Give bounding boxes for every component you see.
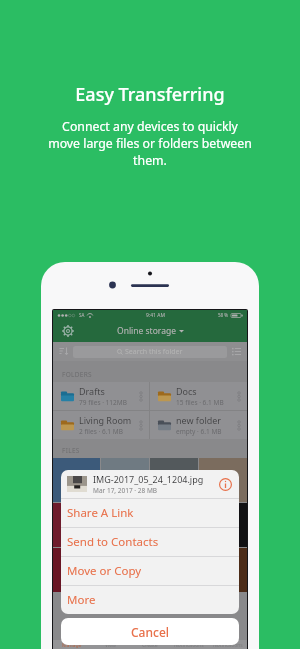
button[interactable]: View [91, 640, 130, 649]
staticText: Share A Link [67, 505, 134, 521]
button[interactable] [150, 458, 198, 502]
button[interactable]: Notifications [169, 640, 208, 649]
staticText: More [67, 592, 96, 608]
button[interactable] [199, 503, 247, 547]
staticText: Send to Contacts [67, 534, 159, 550]
staticText: Manage [62, 642, 82, 649]
button[interactable]: More options [234, 388, 243, 404]
staticText: 15 files · 6.1 MB [176, 398, 224, 407]
button[interactable] [101, 503, 149, 547]
button[interactable] [53, 458, 100, 502]
button[interactable]: Sort [57, 345, 70, 358]
button[interactable]: Settings [61, 324, 75, 338]
staticText: IMG-2017_05_24_1204.jpg [93, 473, 204, 485]
staticText: FOLDERS [62, 370, 92, 379]
button[interactable]: Move or Copy [61, 557, 239, 585]
staticText: Notifications [213, 642, 243, 649]
staticText: Cancel [131, 624, 170, 640]
staticText: 9:41 AM [146, 312, 165, 319]
button[interactable]: Search this folder [73, 346, 227, 358]
button[interactable]: Notifications [208, 640, 247, 649]
staticText: empty · 6.1 MB [176, 427, 222, 436]
button[interactable]: Living Room [53, 411, 149, 439]
button[interactable]: Manage [53, 640, 91, 649]
staticText: View [105, 642, 116, 649]
button[interactable]: Send to Contacts [61, 528, 239, 556]
button[interactable]: Docs [150, 382, 247, 410]
staticText: 79 files · 112MB [79, 398, 127, 407]
button[interactable] [101, 458, 149, 502]
button[interactable]: More options [136, 388, 145, 404]
button[interactable] [150, 503, 198, 547]
staticText: SA [79, 312, 85, 318]
staticText: 58 % [218, 312, 229, 318]
staticText: Mar 17, 2017 · 28 MB [93, 486, 158, 495]
staticText: Easy Transferring [75, 82, 225, 107]
button[interactable] [53, 548, 100, 592]
staticText: Notifications [174, 642, 204, 649]
staticText: Living Room [79, 414, 132, 426]
button[interactable]: More options [136, 417, 145, 433]
button[interactable] [199, 458, 247, 502]
staticText: Connect any devices to quickly move larg… [48, 118, 252, 169]
button[interactable] [199, 548, 247, 592]
staticText: Search this folder [125, 347, 183, 357]
button[interactable]: More options [234, 417, 243, 433]
button[interactable] [101, 548, 149, 592]
button[interactable]: Share A Link [61, 499, 239, 527]
staticText: Create [142, 642, 158, 649]
button[interactable]: File info [218, 477, 233, 492]
button[interactable]: More [61, 586, 239, 614]
staticText: FILES [62, 446, 80, 455]
staticText: Move or Copy [67, 563, 142, 579]
button[interactable] [53, 503, 100, 547]
button[interactable]: Drafts [53, 382, 149, 410]
button[interactable]: List view [230, 345, 243, 358]
staticText: new folder [176, 414, 222, 426]
button[interactable]: Create [130, 640, 169, 649]
button[interactable] [150, 548, 198, 592]
staticText: Drafts [79, 385, 105, 397]
staticText: 2 files · 6.1 MB [79, 427, 123, 436]
button[interactable]: Cancel [61, 618, 239, 645]
button[interactable]: new folder [150, 411, 247, 439]
button[interactable]: Online storage [113, 321, 188, 341]
staticText: Docs [176, 385, 197, 397]
staticText: Online storage [117, 325, 176, 337]
